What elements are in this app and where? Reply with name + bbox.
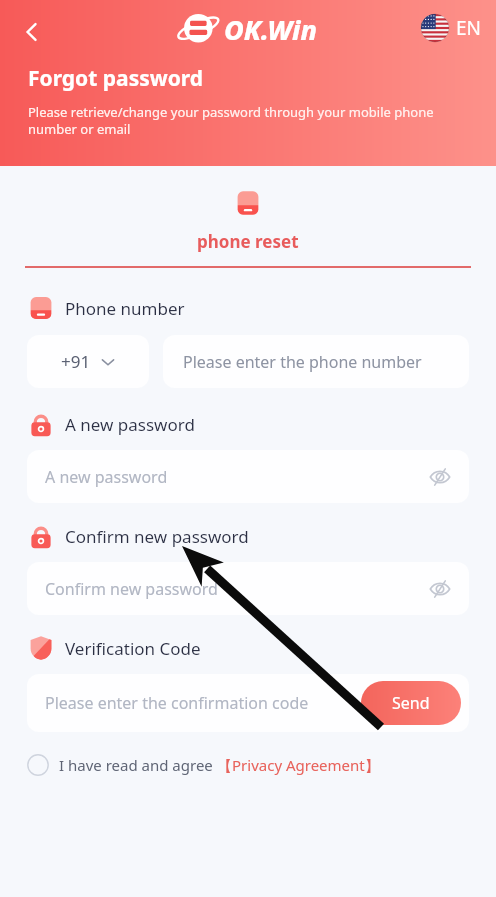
staticText: Send	[392, 692, 430, 714]
button[interactable]: EN	[417, 11, 486, 45]
staticText: +91	[61, 350, 91, 373]
button[interactable]: Show password	[423, 460, 457, 494]
button[interactable]: Confirm new password	[27, 562, 469, 615]
staticText: EN	[456, 15, 482, 41]
button[interactable]: Please enter the phone number	[163, 335, 469, 388]
staticText: I have read and agree	[59, 755, 213, 775]
staticText: Confirm new password	[45, 578, 218, 600]
button[interactable]: Show password	[423, 572, 457, 606]
button[interactable]: phone reset	[0, 188, 496, 268]
staticText: A new password	[65, 413, 195, 436]
staticText: Confirm new password	[65, 525, 249, 548]
staticText: A new password	[45, 466, 168, 488]
button[interactable]: I have read and agree	[27, 754, 496, 776]
button[interactable]: Please enter the confirmation code	[45, 692, 309, 714]
staticText: Verification Code	[65, 637, 201, 660]
staticText: phone reset	[197, 230, 299, 253]
button[interactable]: Send	[361, 681, 461, 725]
staticText: 【Privacy Agreement】	[217, 755, 380, 775]
button[interactable]: A new password	[27, 450, 469, 503]
staticText: Please enter the phone number	[183, 351, 422, 373]
button[interactable]: +91	[27, 335, 149, 388]
button[interactable]: Back	[10, 10, 54, 54]
staticText: Forgot password	[28, 64, 204, 93]
staticText: OK.Win	[224, 11, 317, 48]
staticText: Please retrieve/change your password thr…	[28, 103, 434, 138]
staticText: Phone number	[65, 297, 185, 320]
